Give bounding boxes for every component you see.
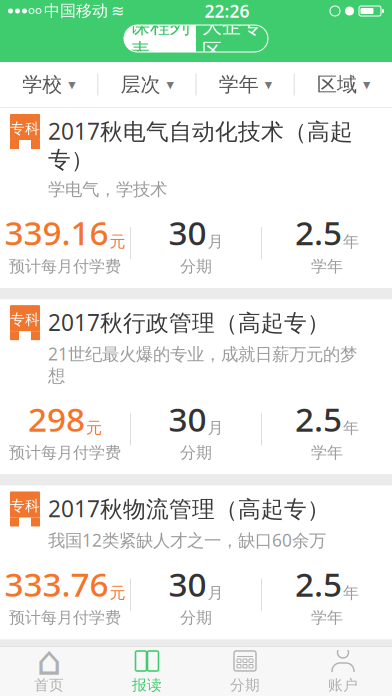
staticText: 339.16 [4, 210, 108, 254]
staticText: 月 [207, 232, 223, 251]
button[interactable]: 专科 [0, 650, 392, 696]
button[interactable]: 专科 [0, 485, 392, 639]
staticText: 2017秋连锁经营（高起专） [48, 658, 330, 689]
staticText: 预计每月付学费 [9, 256, 121, 276]
button[interactable]: 分期 [196, 647, 294, 696]
staticText: ≋ [111, 2, 124, 20]
staticText: 年 [343, 418, 359, 438]
staticText: 2017秋电气自动化技术（高起专） [48, 116, 353, 174]
staticText: 专科 [10, 662, 40, 680]
button[interactable]: 专科 [0, 299, 392, 474]
staticText: 专科 [10, 311, 40, 329]
staticText: 2.5 [295, 562, 342, 606]
staticText: 30 [168, 562, 206, 606]
staticText: 分期 [180, 443, 212, 462]
staticText: 学年 [311, 256, 343, 276]
staticText: 月 [207, 583, 223, 603]
button[interactable]: 学校 [0, 62, 97, 107]
staticText: 学年 [311, 608, 343, 628]
button[interactable]: 首页 [0, 647, 98, 696]
button[interactable]: 学年 [196, 62, 294, 107]
button[interactable]: 层次 [98, 62, 195, 107]
staticText: 学年 [219, 72, 259, 97]
staticText: 年 [343, 232, 359, 251]
staticText: 30 [168, 210, 206, 254]
staticText: 2.5 [295, 210, 342, 254]
staticText: 中国移动 [44, 1, 108, 21]
staticText: 30 [168, 397, 206, 441]
staticText: 元 [109, 583, 125, 603]
staticText: 学校 [22, 72, 62, 97]
staticText: 年 [343, 583, 359, 603]
button[interactable]: 课程列表 [124, 25, 196, 52]
staticText: 元 [86, 418, 102, 438]
staticText: 专科 [10, 119, 40, 137]
staticText: 333.76 [4, 562, 108, 606]
staticText: 账户 [328, 676, 358, 694]
staticText: 预计每月付学费 [9, 443, 121, 462]
staticText: 分期 [180, 608, 212, 628]
button[interactable]: 报读 [98, 647, 196, 696]
staticText: 月 [207, 418, 223, 438]
staticText: ⌂ [36, 638, 61, 684]
staticText: 21世纪最火爆的专业，成就日薪万元的梦想 [48, 342, 357, 387]
button[interactable]: 大企专区 [196, 25, 268, 52]
staticText: 大企专区 [202, 14, 262, 63]
staticText: 报读 [132, 676, 162, 694]
staticText: ▾ [363, 76, 370, 93]
staticText: 元 [109, 232, 125, 251]
staticText: ▾ [68, 76, 75, 93]
button[interactable]: 区域 [295, 62, 392, 107]
staticText: 层次 [120, 72, 160, 97]
staticText: 首页 [34, 676, 64, 694]
button[interactable]: 账户 [294, 647, 392, 696]
staticText: 298 [28, 397, 85, 441]
staticText: 2017秋物流管理（高起专） [48, 493, 330, 524]
staticText: ▾ [265, 76, 272, 93]
staticText: 专科 [10, 497, 40, 515]
staticText: 分期 [180, 256, 212, 276]
staticText: 分期 [230, 676, 260, 694]
staticText: 学电气，学技术 [48, 179, 167, 200]
staticText: 2.5 [295, 397, 342, 441]
staticText: 预计每月付学费 [9, 608, 121, 628]
staticText: ▾ [166, 76, 173, 93]
staticText: 课程列表 [130, 14, 190, 63]
button[interactable]: 专科 [0, 108, 392, 288]
staticText: 我国12类紧缺人才之一，缺口60余万 [48, 529, 326, 552]
staticText: 2017秋行政管理（高起专） [48, 307, 330, 337]
staticText: 区域 [317, 72, 357, 97]
staticText: 学年 [311, 443, 343, 462]
staticText: 22:26 [204, 0, 249, 22]
